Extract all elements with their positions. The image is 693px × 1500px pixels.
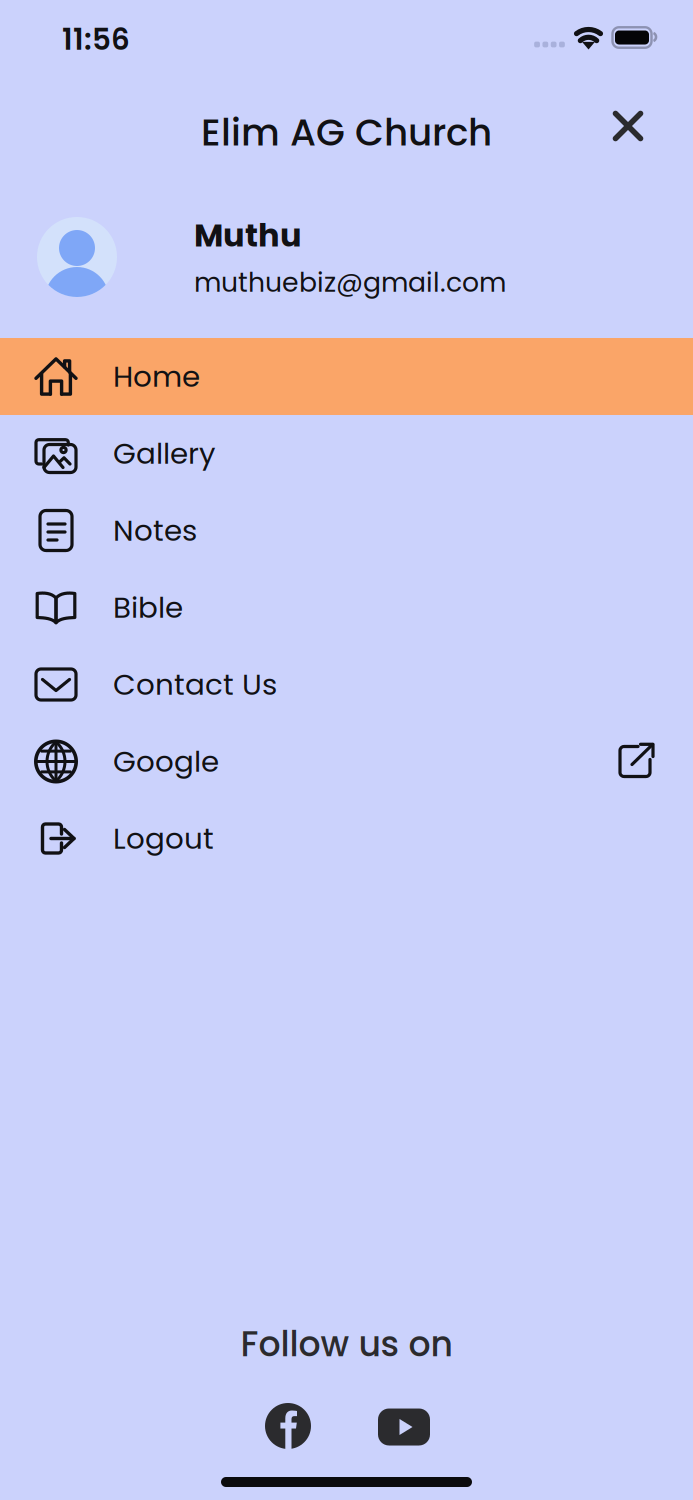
staticText: Elim AG Church <box>201 106 492 159</box>
staticText: Logout <box>113 818 214 859</box>
button[interactable]: Close <box>597 95 659 157</box>
button[interactable]: Google <box>0 723 693 800</box>
staticText: Follow us on <box>240 1320 452 1368</box>
button[interactable]: Notes <box>0 492 693 569</box>
staticText: 11:56 <box>62 19 130 60</box>
staticText: Contact Us <box>113 664 277 705</box>
staticText: Bible <box>113 587 183 628</box>
button[interactable]: Gallery <box>0 415 693 492</box>
staticText: Notes <box>113 510 197 551</box>
button[interactable]: Contact Us <box>0 646 693 723</box>
button[interactable]: YouTube <box>378 1408 430 1445</box>
staticText: Home <box>113 356 200 397</box>
staticText: Muthu <box>194 213 302 258</box>
button[interactable]: Muthu <box>0 198 693 316</box>
button[interactable]: Home <box>0 338 693 415</box>
button[interactable]: Bible <box>0 569 693 646</box>
staticText: Google <box>113 741 219 782</box>
button[interactable]: Facebook <box>265 1403 311 1449</box>
staticText: muthuebiz@gmail.com <box>194 264 506 301</box>
staticText: Gallery <box>113 433 216 474</box>
button[interactable]: Logout <box>0 800 693 877</box>
